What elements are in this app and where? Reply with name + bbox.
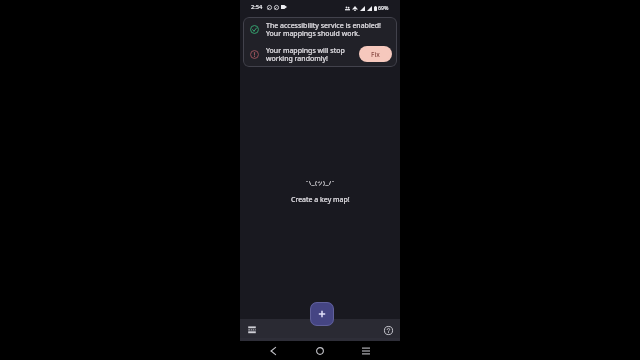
staticText: 2:54 — [251, 3, 263, 11]
staticText: Create a key map! — [291, 195, 350, 205]
button[interactable]: Your mappings will stop working randomly… — [243, 41, 397, 67]
button[interactable]: Fix — [359, 46, 392, 62]
button[interactable]: Recent apps — [356, 341, 376, 360]
staticText: ¯\_(ツ)_/¯ — [305, 180, 335, 187]
staticText: Your mappings will stop working randomly… — [266, 46, 359, 63]
staticText: Fix — [371, 50, 380, 59]
button[interactable]: Back — [263, 341, 283, 360]
staticText: 69% — [378, 4, 389, 11]
staticText: The accessibility service is enabled! Yo… — [266, 21, 381, 38]
button[interactable]: Home — [310, 341, 330, 360]
button[interactable]: The accessibility service is enabled! Yo… — [243, 17, 397, 41]
button[interactable]: Help — [379, 322, 398, 339]
button[interactable]: Key Mapper keyboard — [243, 322, 261, 338]
button[interactable]: Create key map — [310, 302, 334, 326]
